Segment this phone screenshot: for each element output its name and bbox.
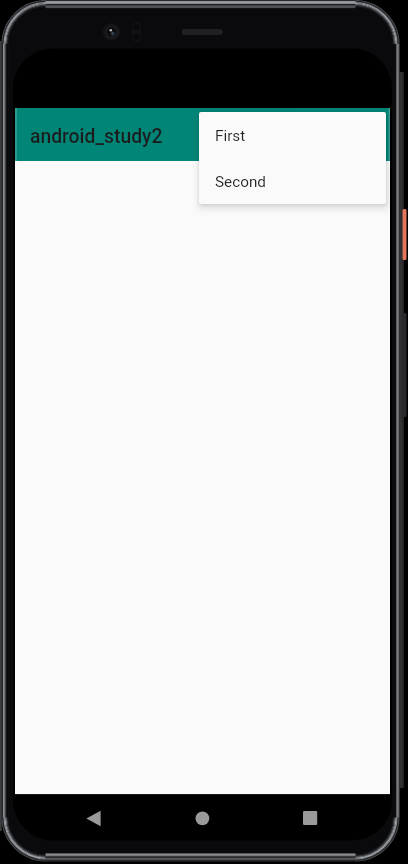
button[interactable]: Second — [199, 158, 386, 204]
staticText: android_study2 — [30, 125, 163, 148]
button[interactable]: android_study2 — [15, 108, 390, 161]
button[interactable]: First — [199, 112, 386, 158]
staticText: First — [215, 127, 246, 145]
staticText: Second — [215, 173, 266, 191]
